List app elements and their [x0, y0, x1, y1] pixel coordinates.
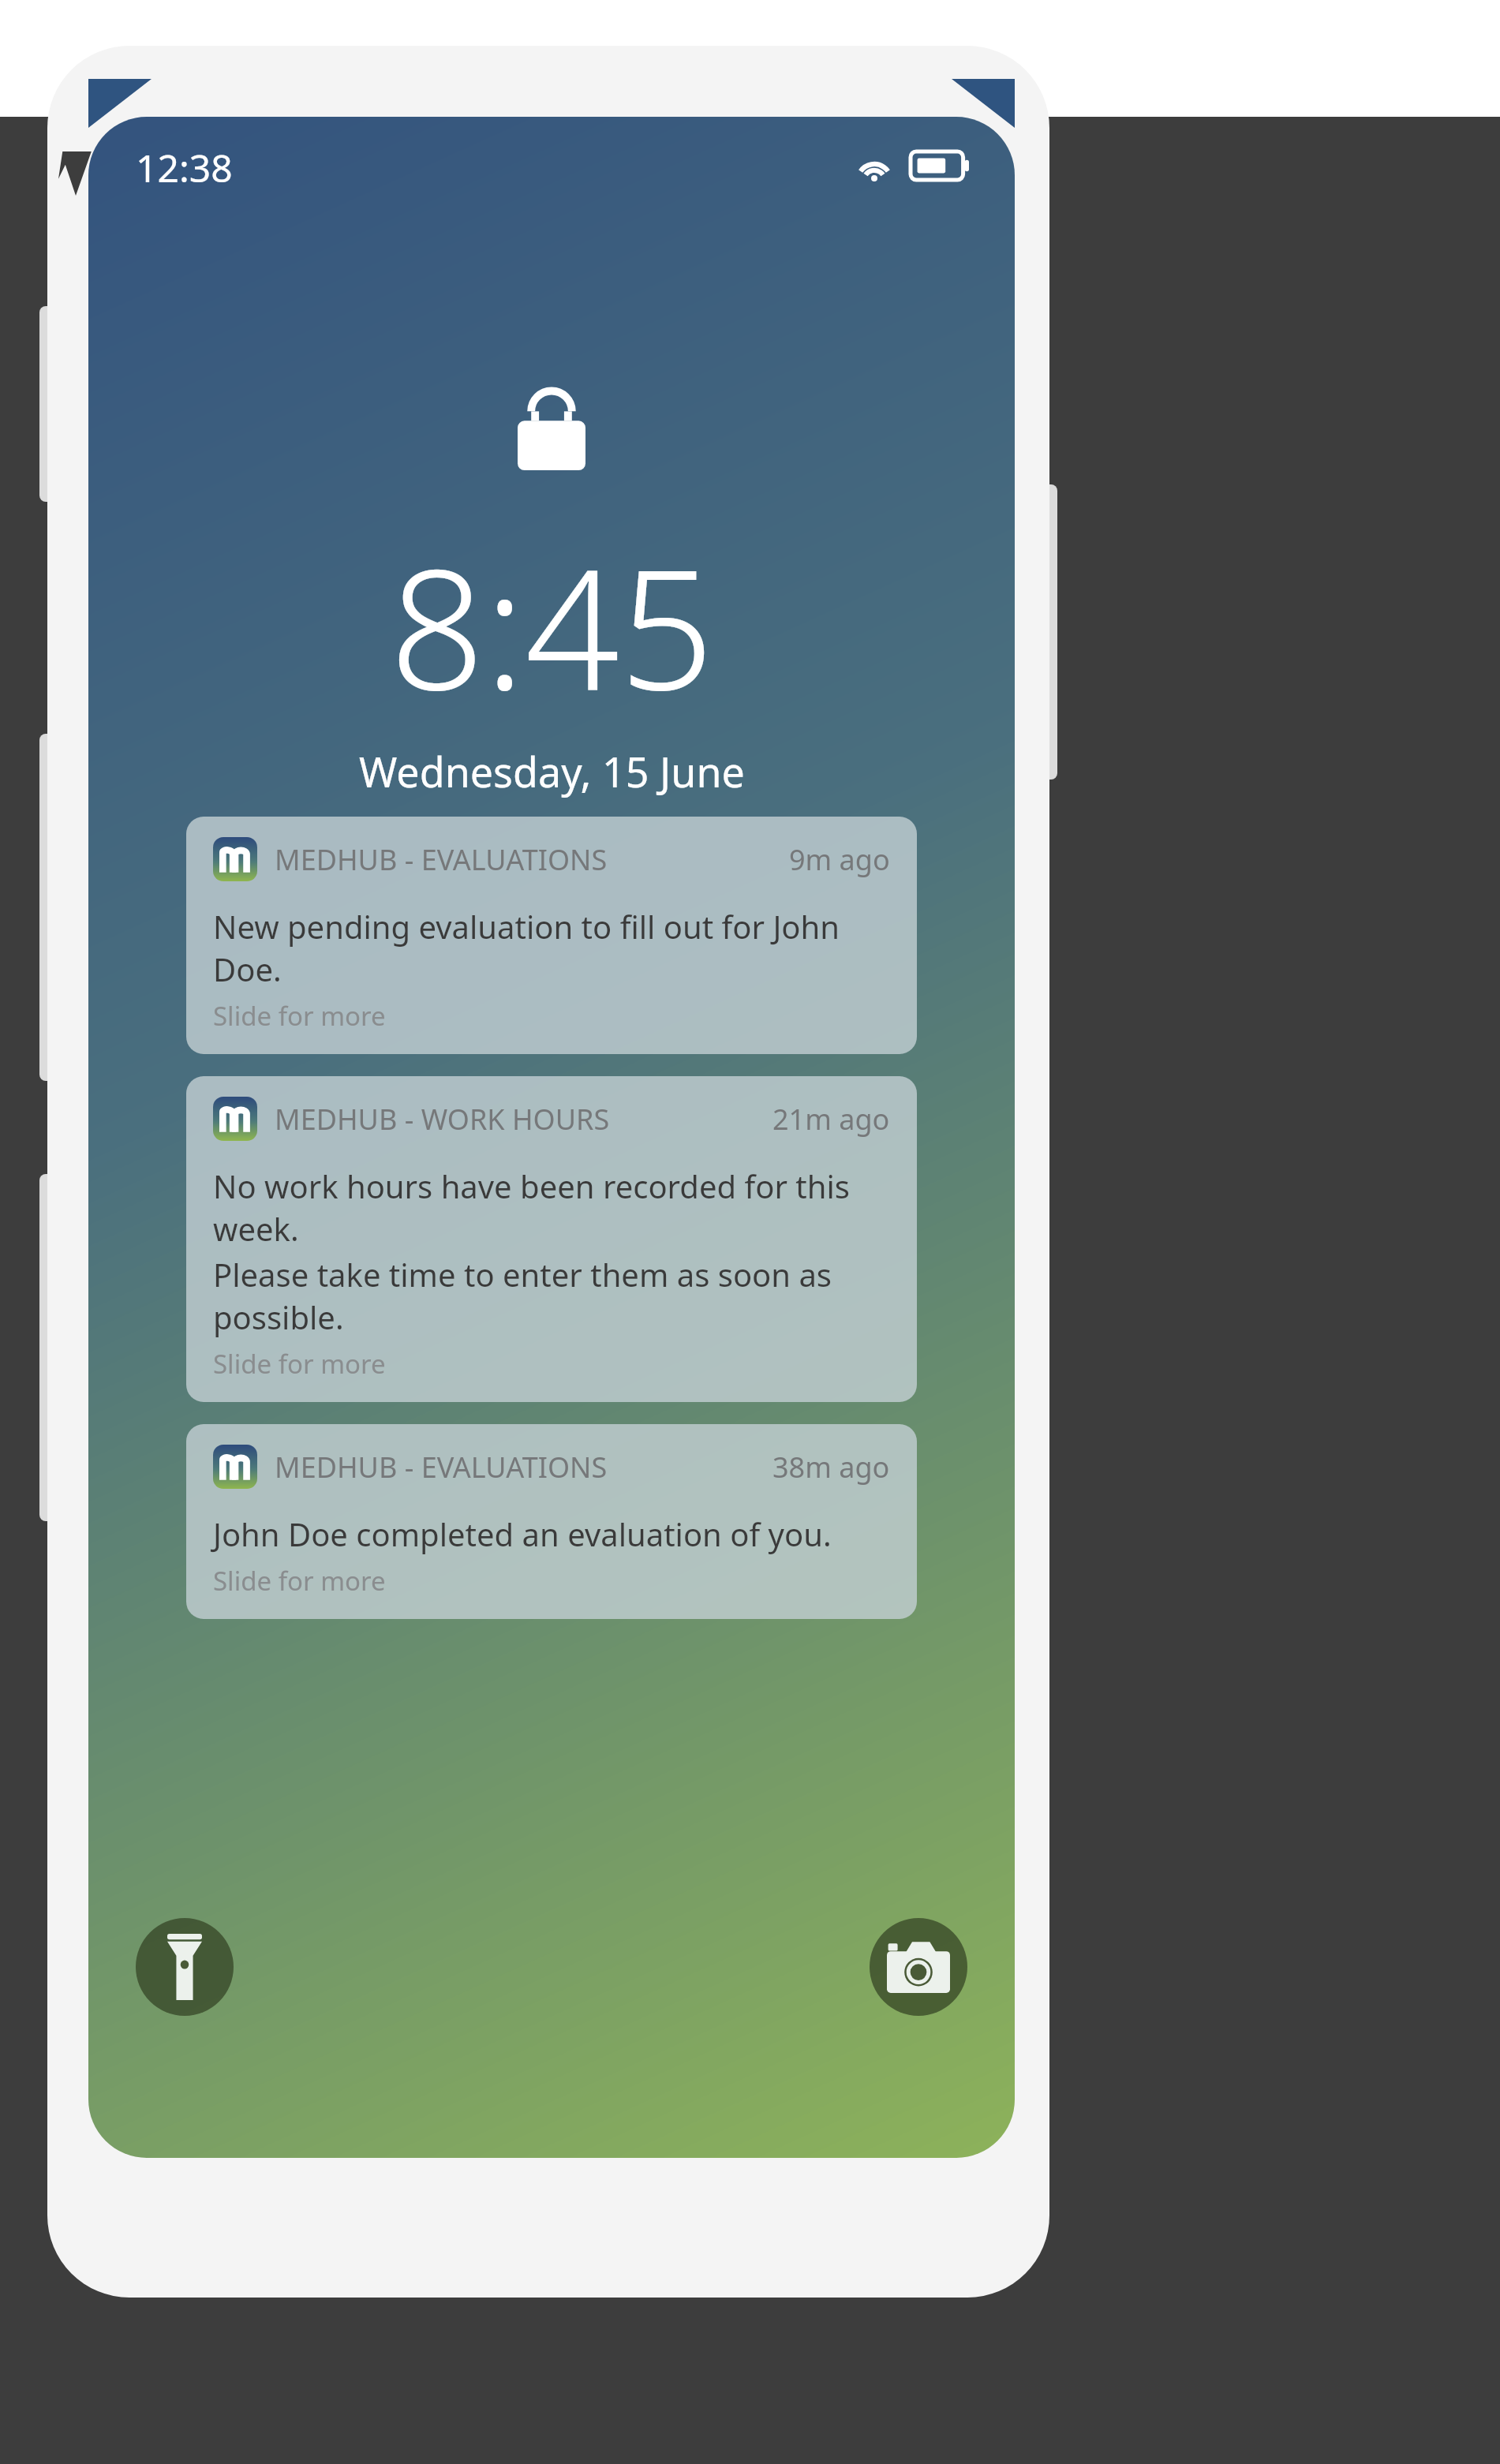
- staticText: Slide for more: [213, 998, 386, 1034]
- staticText: Please take time to enter them as soon a…: [213, 1253, 890, 1338]
- staticText: 38m ago: [772, 1448, 890, 1486]
- staticText: Slide for more: [213, 1563, 386, 1598]
- staticText: MEDHUB - EVALUATIONS: [275, 840, 608, 879]
- staticText: 12:38: [136, 142, 233, 193]
- staticText: John Doe completed an evaluation of you.: [213, 1512, 832, 1555]
- staticText: Slide for more: [213, 1346, 386, 1382]
- staticText: 9m ago: [789, 840, 890, 879]
- button[interactable]: Flashlight: [136, 1918, 234, 2016]
- button[interactable]: MEDHUB - EVALUATIONS: [186, 817, 917, 1054]
- button[interactable]: MEDHUB - WORK HOURS: [186, 1076, 917, 1402]
- staticText: New pending evaluation to fill out for J…: [213, 905, 890, 990]
- staticText: MEDHUB - WORK HOURS: [275, 1100, 610, 1139]
- button[interactable]: Camera: [870, 1918, 967, 2016]
- staticText: 21m ago: [772, 1100, 890, 1139]
- staticText: MEDHUB - EVALUATIONS: [275, 1448, 608, 1486]
- staticText: Wednesday, 15 June: [359, 743, 745, 799]
- button[interactable]: MEDHUB - EVALUATIONS: [186, 1424, 917, 1619]
- staticText: No work hours have been recorded for thi…: [213, 1165, 890, 1250]
- staticText: 8:45: [390, 513, 714, 738]
